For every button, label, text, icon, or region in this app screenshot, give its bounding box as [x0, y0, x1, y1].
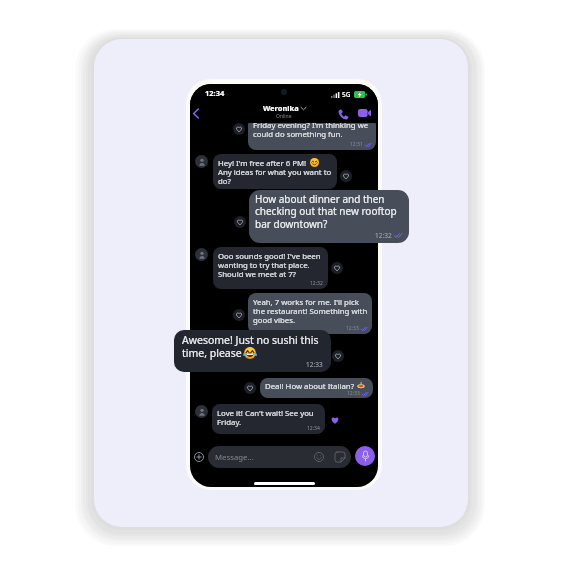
- button[interactable]: Add attachment: [190, 448, 208, 466]
- staticText: 5G: [342, 90, 351, 99]
- button[interactable]: Awesome! Just no sushi this time, please: [174, 330, 331, 372]
- staticText: 12:31: [350, 141, 363, 148]
- staticText: Friday evening? I'm thinking we could do…: [253, 120, 369, 139]
- button[interactable]: Friday evening? I'm thinking we could do…: [248, 117, 376, 150]
- button[interactable]: Weronika: [243, 103, 325, 120]
- staticText: 12:34: [307, 425, 320, 432]
- button[interactable]: Hey! I'm free after 6 PM! Any ideas for …: [213, 154, 337, 189]
- button[interactable]: React with heart: [331, 262, 343, 274]
- staticText: How about dinner and then checking out t…: [255, 192, 397, 231]
- button[interactable]: Emoji: [313, 451, 324, 462]
- staticText: 12:33: [346, 325, 359, 332]
- staticText: 12:33: [347, 390, 360, 397]
- button[interactable]: React with heart: [233, 309, 245, 321]
- button[interactable]: Back: [190, 105, 205, 122]
- staticText: Love it! Can't wait! See you Friday.: [217, 408, 314, 427]
- staticText: Ooo sounds good! I've been wanting to tr…: [218, 251, 321, 279]
- button[interactable]: Video call: [355, 104, 373, 122]
- staticText: Online: [276, 113, 292, 120]
- staticText: 12:34: [205, 88, 225, 98]
- button[interactable]: Deal! How about Italian?: [260, 378, 373, 398]
- staticText: Hey! I'm free after 6 PM! Any ideas for …: [218, 158, 332, 186]
- staticText: 12:32: [375, 231, 392, 240]
- button[interactable]: Ooo sounds good! I've been wanting to tr…: [213, 247, 328, 289]
- button[interactable]: React with heart: [340, 170, 352, 182]
- button[interactable]: How about dinner and then checking out t…: [249, 190, 409, 243]
- staticText: Deal! How about Italian?: [265, 381, 355, 392]
- button[interactable]: Love it! Can't wait! See you Friday.: [212, 404, 325, 434]
- button[interactable]: React with heart: [244, 382, 256, 394]
- button[interactable]: React with heart: [332, 350, 344, 362]
- staticText: Message...: [215, 452, 254, 463]
- button[interactable]: Yeah, 7 works for me. I'll pick the rest…: [248, 293, 372, 334]
- button[interactable]: Voice call: [334, 105, 352, 123]
- button[interactable]: Record voice message: [355, 446, 375, 466]
- staticText: Weronika: [263, 103, 299, 113]
- staticText: Yeah, 7 works for me. I'll pick the rest…: [253, 297, 368, 325]
- staticText: 12:33: [306, 360, 323, 369]
- staticText: 12:32: [310, 280, 323, 287]
- button[interactable]: Message...: [208, 446, 351, 468]
- button[interactable]: React with heart: [233, 123, 245, 135]
- staticText: Awesome! Just no sushi this time, please: [182, 333, 319, 360]
- button[interactable]: React with heart: [234, 216, 246, 228]
- button[interactable]: Stickers: [334, 451, 345, 462]
